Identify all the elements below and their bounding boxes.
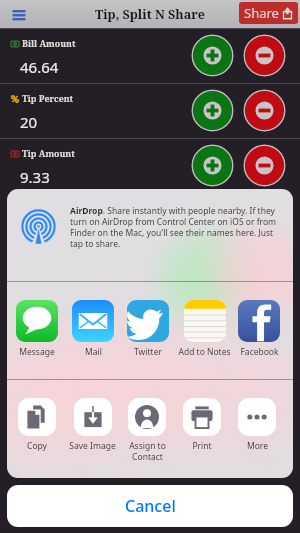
button[interactable]: Menu (10, 5, 28, 23)
staticText: Add to Notes (178, 346, 231, 358)
staticText: 46.64 (20, 57, 59, 77)
staticText: Mail (85, 346, 102, 358)
staticText: Tip, Split N Share (95, 6, 205, 23)
staticText: More (247, 440, 268, 452)
button[interactable]: Save Image (65, 398, 119, 470)
staticText: 20 (20, 112, 38, 132)
button[interactable]: Increase (191, 89, 234, 132)
button[interactable]: Decrease (243, 89, 286, 132)
button[interactable]: Twitter (120, 300, 176, 358)
staticText: AirDrop. Share instantly with people nea… (70, 205, 282, 249)
staticText: Share (244, 4, 279, 22)
staticText: Print (192, 440, 212, 452)
button[interactable]: Facebook (231, 300, 287, 358)
staticText: 9.33 (20, 167, 50, 187)
button[interactable]: Add to Notes (176, 300, 232, 358)
button[interactable]: More (230, 398, 284, 470)
button[interactable]: Assign to Contact (120, 398, 174, 470)
staticText: Tip Percent (22, 93, 74, 105)
button[interactable]: Copy (10, 398, 64, 470)
button[interactable]: Decrease (243, 144, 286, 187)
button[interactable]: Increase (191, 144, 234, 187)
button[interactable]: Mail (65, 300, 121, 358)
button[interactable]: Cancel (7, 485, 293, 527)
staticText: Assign to Contact (129, 440, 166, 462)
staticText: Cancel (125, 495, 176, 517)
staticText: Twitter (134, 346, 162, 358)
button[interactable]: Print (175, 398, 229, 470)
button[interactable]: Message (9, 300, 65, 358)
staticText: Facebook (240, 346, 279, 358)
staticText: Message (19, 346, 55, 358)
staticText: Copy (27, 440, 47, 452)
button[interactable]: Decrease (243, 34, 286, 77)
staticText: Tip Amount (22, 148, 75, 160)
staticText: Save Image (69, 440, 116, 452)
button[interactable]: Share (239, 2, 298, 24)
button[interactable]: Increase (191, 34, 234, 77)
staticText: Bill Amount (22, 38, 76, 50)
